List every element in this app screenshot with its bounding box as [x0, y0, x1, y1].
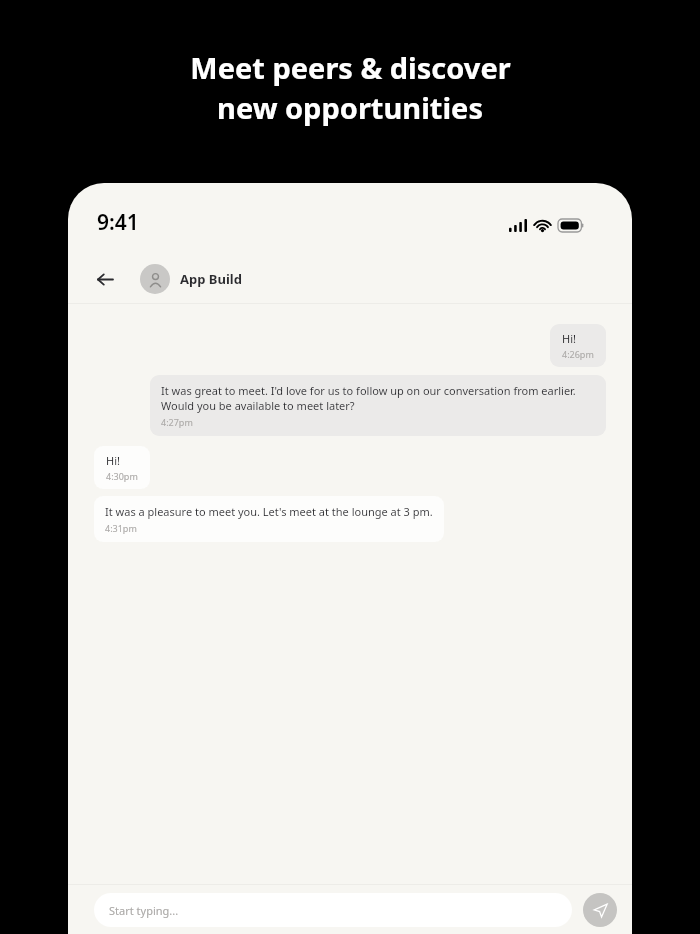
staticText: Hi!	[562, 331, 576, 346]
button[interactable]: It was a pleasure to meet you. Let's mee…	[94, 496, 444, 542]
button[interactable]: Send	[583, 893, 617, 927]
staticText: new opportunities	[217, 88, 483, 127]
staticText: App Build	[180, 270, 242, 288]
button[interactable]: App Build	[140, 264, 242, 294]
staticText: Meet peers & discover	[190, 48, 511, 87]
button[interactable]: It was great to meet. I'd love for us to…	[150, 375, 606, 436]
button[interactable]: Back	[92, 266, 118, 292]
staticText: Start typing...	[109, 903, 179, 918]
button[interactable]: Start typing...	[94, 893, 572, 927]
staticText: 4:31pm	[105, 522, 137, 534]
button[interactable]: Hi!	[94, 446, 150, 489]
staticText: 4:30pm	[106, 470, 138, 482]
staticText: Hi!	[106, 453, 120, 468]
staticText: It was a pleasure to meet you. Let's mee…	[105, 504, 433, 519]
staticText: It was great to meet. I'd love for us to…	[161, 383, 595, 413]
staticText: 9:41	[97, 208, 139, 237]
staticText: 4:26pm	[562, 348, 594, 360]
button[interactable]: Hi!	[550, 324, 606, 367]
staticText: 4:27pm	[161, 416, 193, 428]
